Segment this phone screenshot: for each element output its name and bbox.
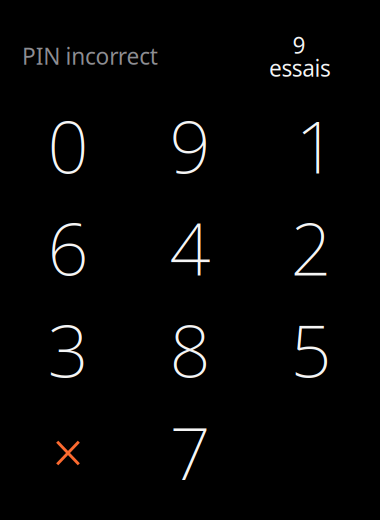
button[interactable]: 9 xyxy=(129,94,251,196)
staticText: 0 xyxy=(47,98,88,193)
staticText: 2 xyxy=(290,200,331,295)
button[interactable]: 5 xyxy=(250,298,372,400)
staticText: 9 xyxy=(292,30,305,60)
button[interactable]: 6 xyxy=(7,196,129,298)
staticText: 3 xyxy=(47,302,88,397)
staticText: 4 xyxy=(169,200,210,295)
button[interactable]: 7 xyxy=(129,401,251,503)
staticText: 6 xyxy=(47,200,88,295)
staticText: 8 xyxy=(169,302,210,397)
staticText: 7 xyxy=(169,404,210,500)
staticText: 5 xyxy=(290,302,331,397)
button[interactable]: 8 xyxy=(129,298,251,400)
staticText: PIN incorrect xyxy=(22,41,158,71)
button[interactable]: 3 xyxy=(7,298,129,400)
staticText: essais xyxy=(269,53,331,83)
staticText: 9 xyxy=(169,98,210,193)
button[interactable]: 1 xyxy=(255,94,377,196)
staticText: 1 xyxy=(295,98,336,193)
button[interactable]: 0 xyxy=(7,94,129,196)
button[interactable]: 2 xyxy=(250,196,372,298)
button[interactable]: 4 xyxy=(129,196,251,298)
button[interactable]: Clear xyxy=(7,401,129,503)
